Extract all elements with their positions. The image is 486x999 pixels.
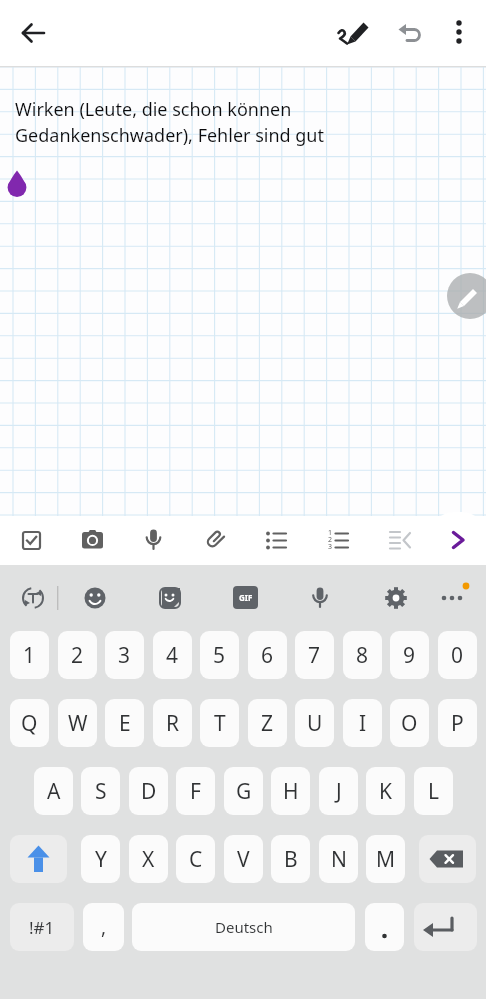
button[interactable]: B	[271, 835, 310, 883]
staticText: H	[283, 777, 299, 806]
staticText: W	[68, 709, 88, 738]
button[interactable]	[389, 11, 433, 55]
staticText: T	[214, 709, 226, 738]
staticText: C	[189, 845, 203, 874]
button[interactable]: 5	[200, 631, 239, 679]
button[interactable]: GIF	[233, 586, 258, 609]
staticText: D	[141, 777, 157, 806]
button[interactable]: P	[438, 699, 477, 747]
button[interactable]	[419, 835, 476, 883]
staticText: V	[237, 845, 250, 874]
staticText: 9	[403, 641, 416, 670]
button[interactable]: M	[366, 835, 405, 883]
button[interactable]: I	[343, 699, 382, 747]
button[interactable]	[414, 903, 477, 951]
button[interactable]	[255, 519, 298, 562]
button[interactable]	[10, 835, 67, 883]
button[interactable]	[365, 903, 404, 951]
button[interactable]: 8	[343, 631, 382, 679]
button[interactable]: D	[129, 767, 168, 815]
button[interactable]: K	[366, 767, 405, 815]
button[interactable]: F	[176, 767, 215, 815]
staticText: 5	[213, 641, 226, 670]
button[interactable]: V	[224, 835, 263, 883]
button[interactable]: H	[271, 767, 310, 815]
staticText: Q	[21, 709, 38, 738]
button[interactable]: 2	[58, 631, 97, 679]
button[interactable]	[375, 577, 417, 619]
staticText: 1	[328, 528, 333, 538]
button[interactable]	[71, 519, 114, 562]
staticText: B	[284, 845, 298, 874]
staticText: 8	[356, 641, 369, 670]
staticText: 4	[166, 641, 179, 670]
staticText: 3	[328, 542, 333, 552]
staticText: Y	[95, 845, 107, 874]
staticText: M	[376, 845, 396, 874]
button[interactable]	[132, 519, 175, 562]
staticText: G	[236, 777, 252, 806]
button[interactable]: !#1	[10, 903, 74, 951]
button[interactable]	[193, 519, 236, 562]
button[interactable]: 7	[295, 631, 334, 679]
staticText: 0	[451, 641, 464, 670]
staticText: L	[428, 777, 440, 806]
staticText: O	[401, 709, 418, 738]
button[interactable]: 6	[248, 631, 287, 679]
staticText: S	[95, 777, 107, 806]
button[interactable]: 4	[153, 631, 192, 679]
button[interactable]: Y	[81, 835, 120, 883]
button[interactable]: 1	[10, 631, 49, 679]
button[interactable]: O	[390, 699, 429, 747]
button[interactable]	[447, 273, 486, 319]
button[interactable]: ,	[83, 903, 124, 951]
button[interactable]: X	[129, 835, 168, 883]
button[interactable]: 0	[438, 631, 477, 679]
button[interactable]	[74, 577, 116, 619]
staticText: Z	[261, 709, 274, 738]
button[interactable]: R	[153, 699, 192, 747]
button[interactable]	[11, 11, 55, 55]
button[interactable]	[379, 519, 422, 562]
staticText: 1	[23, 641, 36, 670]
button[interactable]: Deutsch	[132, 903, 355, 951]
button[interactable]: C	[176, 835, 215, 883]
button[interactable]	[433, 577, 475, 619]
button[interactable]: J	[319, 767, 358, 815]
button[interactable]	[10, 519, 53, 562]
staticText: 7	[308, 641, 321, 670]
staticText: E	[119, 709, 131, 738]
button[interactable]	[12, 577, 54, 619]
button[interactable]	[430, 512, 486, 561]
button[interactable]: 1	[317, 519, 360, 562]
staticText: I	[359, 709, 367, 738]
button[interactable]: S	[81, 767, 120, 815]
staticText: U	[307, 709, 323, 738]
staticText: 6	[261, 641, 274, 670]
button[interactable]: U	[295, 699, 334, 747]
button[interactable]: G	[224, 767, 263, 815]
button[interactable]: 3	[105, 631, 144, 679]
button[interactable]: 9	[390, 631, 429, 679]
staticText: 2	[71, 641, 84, 670]
button[interactable]: T	[200, 699, 239, 747]
staticText: P	[451, 709, 464, 738]
button[interactable]	[331, 10, 375, 54]
button[interactable]: E	[105, 699, 144, 747]
staticText: !#1	[29, 916, 55, 939]
staticText: J	[336, 777, 342, 806]
button[interactable]: W	[58, 699, 97, 747]
staticText: 2	[328, 535, 333, 545]
staticText: Wirken (Leute, die schon können Gedanken…	[15, 97, 324, 147]
button[interactable]: Q	[10, 699, 49, 747]
button[interactable]	[149, 577, 191, 619]
button[interactable]: Z	[248, 699, 287, 747]
staticText: K	[379, 777, 392, 806]
button[interactable]: L	[414, 767, 453, 815]
staticText: GIF	[239, 592, 253, 603]
button[interactable]: A	[34, 767, 73, 815]
button[interactable]: N	[319, 835, 358, 883]
staticText: A	[47, 777, 61, 806]
button[interactable]	[437, 10, 481, 54]
button[interactable]	[299, 577, 341, 619]
